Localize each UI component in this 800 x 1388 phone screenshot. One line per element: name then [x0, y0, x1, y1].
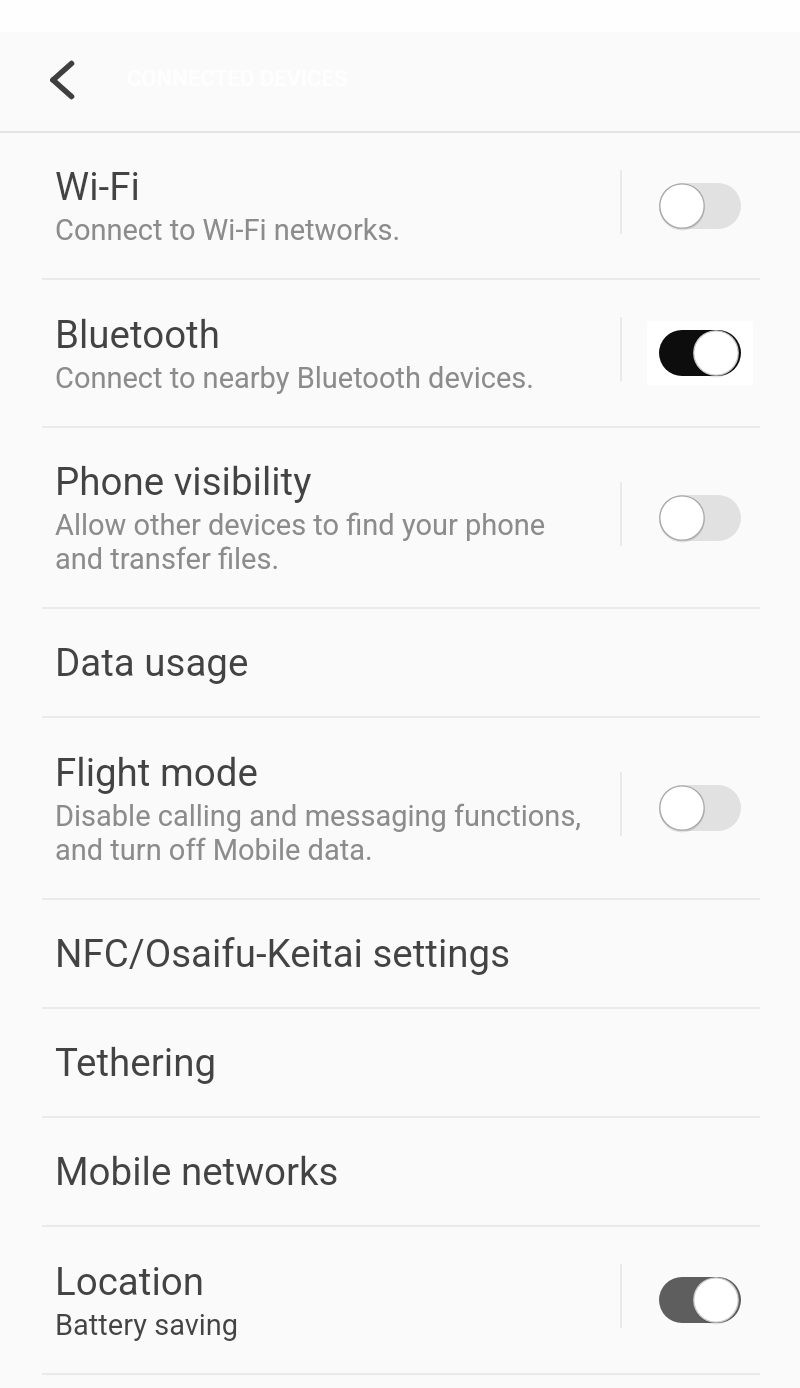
button[interactable]: On — [630, 308, 770, 398]
button[interactable]: Mobile networks — [0, 1118, 800, 1225]
staticText: Battery saving — [55, 1308, 239, 1342]
staticText: NFC/Osaifu-Keitai settings — [55, 931, 511, 976]
staticText: Allow other devices to find your phone a… — [55, 508, 546, 576]
staticText: Mobile networks — [55, 1149, 339, 1194]
button[interactable]: Phone visibility — [0, 428, 800, 607]
staticText: Connect to Wi-Fi networks. — [55, 213, 401, 247]
staticText: Tethering — [55, 1040, 217, 1085]
staticText: Data usage — [55, 640, 249, 685]
staticText: Disable calling and messaging functions,… — [55, 799, 582, 867]
button[interactable]: Flight mode — [0, 718, 800, 898]
staticText: Connect to nearby Bluetooth devices. — [55, 361, 534, 395]
staticText: Location — [55, 1259, 204, 1304]
button[interactable]: Bluetooth — [0, 280, 800, 426]
staticText: Wi-Fi — [55, 164, 140, 209]
staticText: Bluetooth — [55, 312, 220, 357]
button[interactable]: Off — [630, 763, 770, 853]
button[interactable]: Location — [0, 1227, 800, 1373]
staticText: Phone visibility — [55, 459, 312, 504]
button[interactable]: Off — [630, 161, 770, 251]
button[interactable]: Wi-Fi — [0, 133, 800, 278]
button[interactable]: Data usage — [0, 609, 800, 716]
staticText: Flight mode — [55, 750, 258, 795]
button[interactable]: Back — [16, 34, 108, 126]
button[interactable]: On — [630, 1255, 770, 1345]
button[interactable]: NFC/Osaifu-Keitai settings — [0, 900, 800, 1007]
button[interactable]: Off — [630, 473, 770, 563]
button[interactable]: Tethering — [0, 1009, 800, 1116]
